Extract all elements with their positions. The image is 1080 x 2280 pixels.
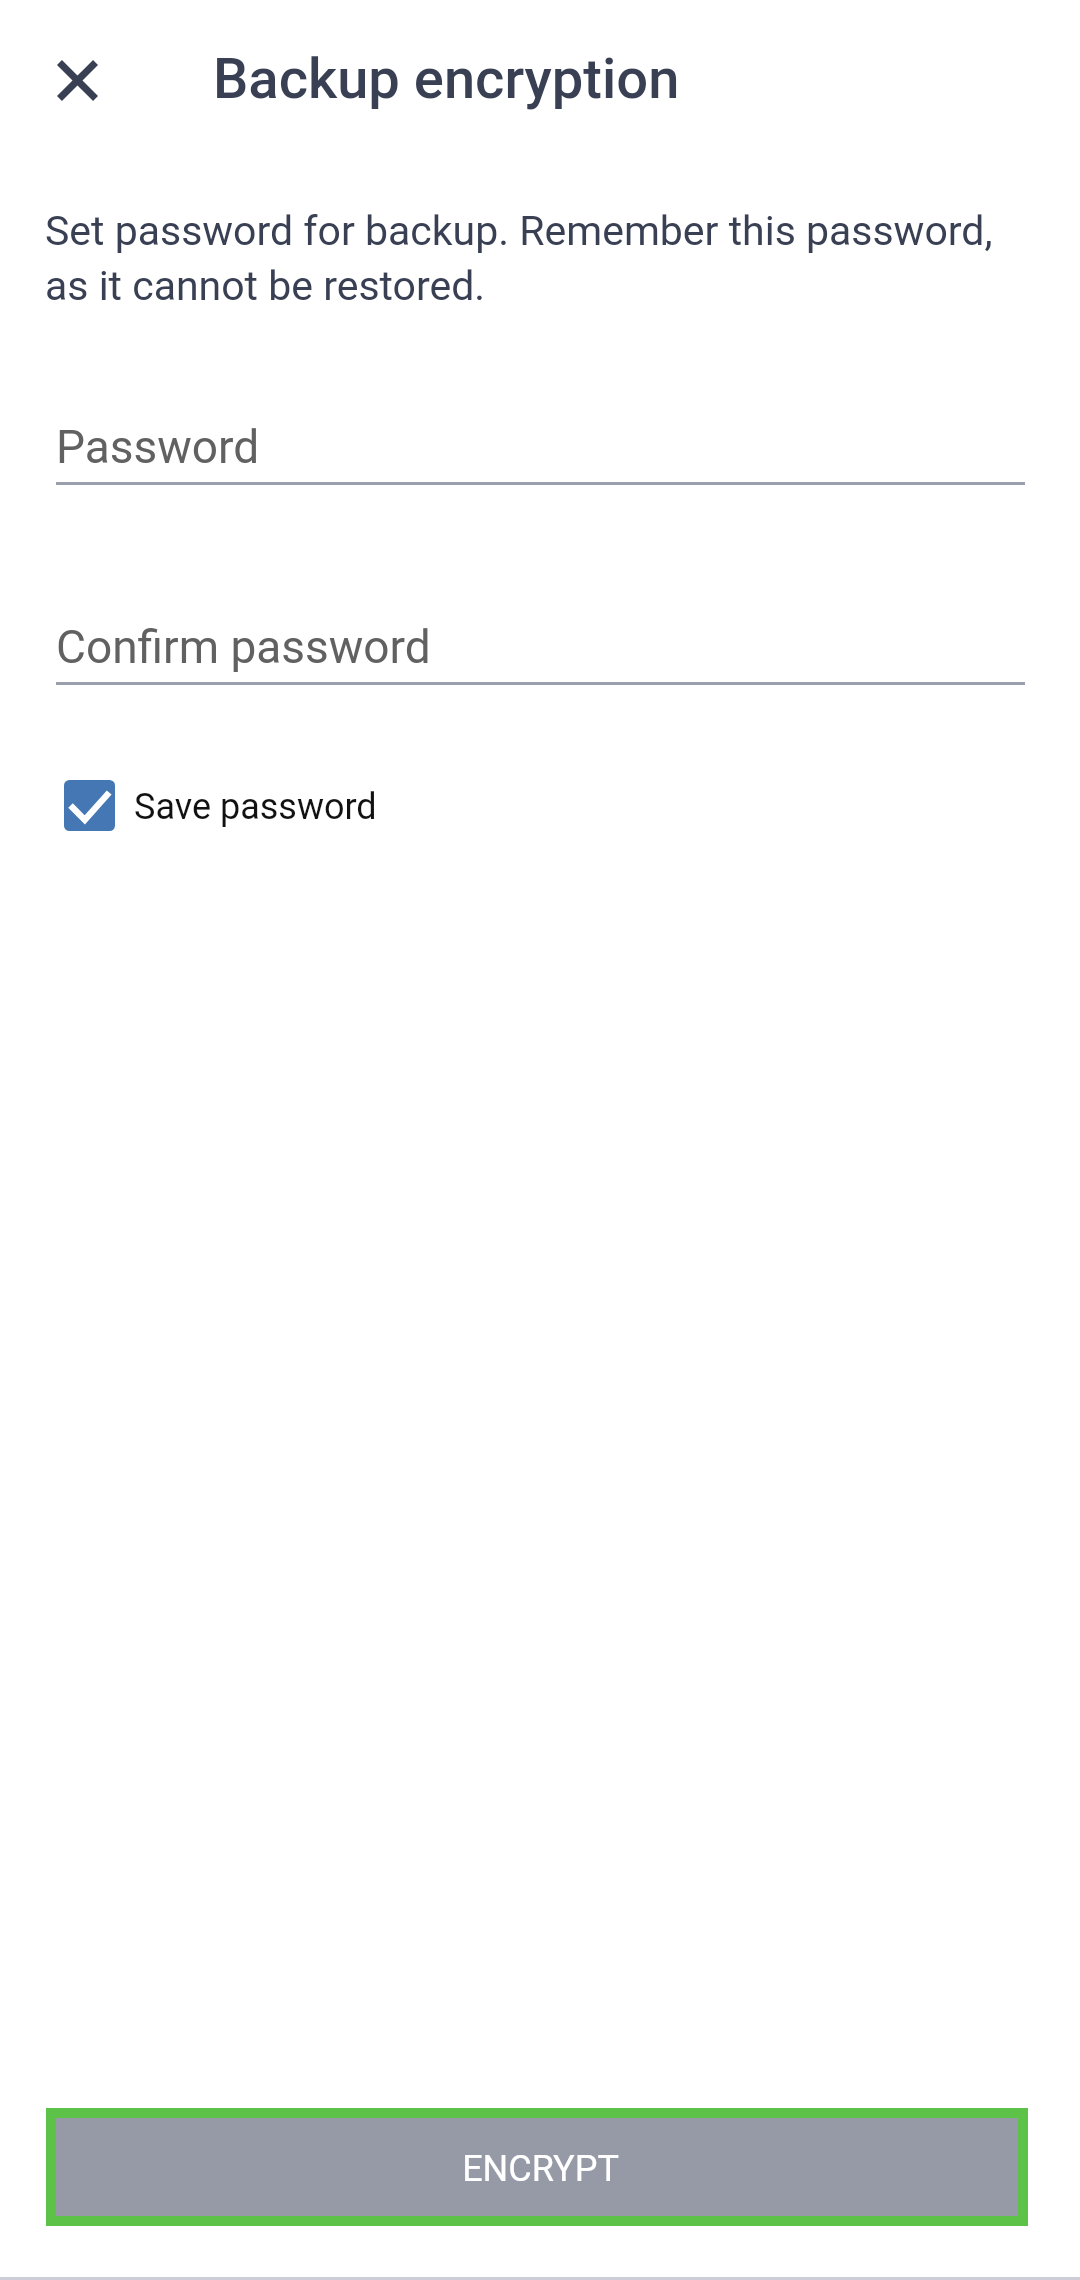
staticText: ENCRYPT	[462, 2148, 619, 2190]
button[interactable]: Confirm password	[0, 620, 1080, 700]
staticText: Set password for backup. Remember this p…	[45, 207, 1005, 310]
button[interactable]: ENCRYPT	[46, 2108, 1028, 2226]
staticText: Backup encryption	[213, 46, 680, 112]
staticText: Save password	[134, 786, 377, 828]
button[interactable]: Save password	[44, 759, 378, 851]
button[interactable]: Password	[0, 420, 1080, 500]
button[interactable]: Close	[29, 32, 125, 128]
staticText: Confirm password	[56, 620, 431, 674]
staticText: Password	[56, 420, 260, 474]
